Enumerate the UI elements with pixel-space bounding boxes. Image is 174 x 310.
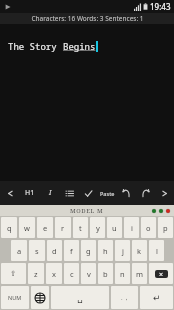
staticText: ↵ <box>153 293 161 303</box>
button[interactable]: The Story <box>0 24 174 181</box>
button[interactable]: c <box>64 263 79 284</box>
staticText: g <box>86 246 91 256</box>
button[interactable]: w <box>19 217 35 238</box>
button[interactable]: f <box>64 240 79 261</box>
staticText: f <box>70 246 73 256</box>
staticText: i <box>131 223 133 233</box>
staticText: d <box>52 246 57 256</box>
button[interactable]: Switch keyboard <box>31 286 49 309</box>
button[interactable]: u <box>107 217 122 238</box>
staticText: u <box>112 223 117 233</box>
button[interactable]: v <box>81 263 96 284</box>
staticText: n <box>120 269 125 279</box>
button[interactable]: y <box>90 217 105 238</box>
button[interactable]: Next <box>155 181 174 205</box>
staticText: m <box>136 269 144 279</box>
staticText: c <box>70 269 74 279</box>
staticText: ␣ <box>77 293 83 303</box>
staticText: Paste <box>100 190 115 197</box>
button[interactable]: Undo <box>136 181 155 205</box>
button[interactable]: Checklist <box>79 181 98 205</box>
staticText: h <box>103 246 108 256</box>
staticText: w <box>24 223 30 233</box>
button[interactable]: n <box>115 263 130 284</box>
staticText: s <box>35 246 39 256</box>
staticText: o <box>146 223 151 233</box>
button[interactable]: H1 <box>20 181 40 205</box>
button[interactable]: z <box>28 263 44 284</box>
staticText: e <box>43 223 48 233</box>
staticText: Characters: 16 Words: 3 Sentences: 1 <box>31 14 144 23</box>
staticText: × <box>159 270 164 278</box>
staticText: NUM <box>8 294 22 301</box>
staticText: l <box>156 246 158 256</box>
button[interactable]: k <box>132 240 147 261</box>
button[interactable]: j <box>115 240 130 261</box>
staticText: b <box>103 269 108 279</box>
staticText: k <box>137 246 142 256</box>
staticText: z <box>34 269 38 279</box>
button[interactable]: d <box>47 240 62 261</box>
button[interactable]: t <box>73 217 88 238</box>
staticText: . , <box>121 294 128 302</box>
staticText: x <box>52 269 56 279</box>
staticText: ⇧ <box>10 269 17 278</box>
staticText: 19:43 <box>150 1 171 12</box>
button[interactable]: m <box>132 263 147 284</box>
button[interactable]: x <box>46 263 62 284</box>
staticText: t <box>79 223 82 233</box>
button[interactable]: g <box>81 240 96 261</box>
button[interactable]: h <box>98 240 113 261</box>
button[interactable]: . , <box>111 286 138 309</box>
staticText: The Story <box>8 40 63 52</box>
button[interactable]: e <box>37 217 53 238</box>
button[interactable]: i <box>124 217 139 238</box>
staticText: Begins <box>63 40 96 52</box>
button[interactable]: NUM <box>1 286 29 309</box>
staticText: H1 <box>25 188 35 198</box>
button[interactable]: b <box>98 263 113 284</box>
staticText: y <box>96 223 100 233</box>
staticText: r <box>61 223 65 233</box>
button[interactable]: I <box>40 181 60 205</box>
button[interactable]: r <box>55 217 71 238</box>
button[interactable]: s <box>29 240 45 261</box>
staticText: MODEL M <box>70 207 104 215</box>
button[interactable]: Bullet list <box>60 181 79 205</box>
staticText: j <box>122 246 124 256</box>
staticText: I <box>49 188 52 198</box>
staticText: q <box>7 223 12 233</box>
button[interactable]: ↵ <box>140 286 173 309</box>
button[interactable]: o <box>141 217 156 238</box>
button[interactable]: a <box>11 240 27 261</box>
staticText: v <box>87 269 91 279</box>
button[interactable]: Backspace <box>149 263 173 284</box>
button[interactable]: p <box>158 217 173 238</box>
button[interactable]: Previous <box>0 181 20 205</box>
staticText: p <box>163 223 168 233</box>
staticText: a <box>17 246 22 256</box>
button[interactable]: l <box>149 240 164 261</box>
button[interactable]: Redo <box>117 181 136 205</box>
button[interactable]: ⇧ <box>1 263 26 284</box>
button[interactable]: Paste <box>98 181 117 205</box>
button[interactable]: q <box>1 217 17 238</box>
button[interactable]: ␣ <box>51 286 109 309</box>
